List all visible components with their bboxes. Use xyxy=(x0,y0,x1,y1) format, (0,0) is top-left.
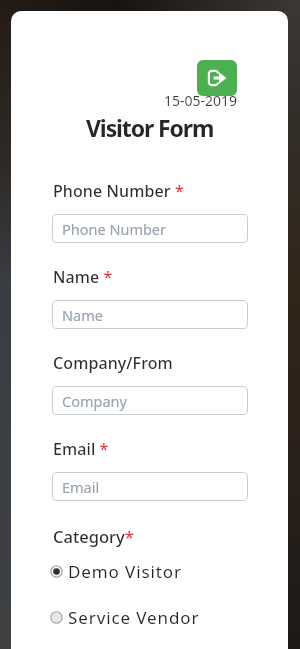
staticText: Service Vendor xyxy=(68,606,200,629)
button[interactable]: Company xyxy=(52,386,248,415)
staticText: Category* xyxy=(53,525,134,547)
staticText: Company xyxy=(62,391,127,411)
button[interactable]: Service Vendor xyxy=(50,606,200,629)
button[interactable]: Email xyxy=(52,472,248,501)
button[interactable] xyxy=(197,60,237,96)
staticText: Email xyxy=(62,477,100,497)
staticText: Name xyxy=(62,305,103,325)
staticText: Email * xyxy=(53,438,109,460)
staticText: Visitor Form xyxy=(86,112,214,143)
button[interactable]: Demo Visitor xyxy=(50,560,182,583)
staticText: Demo Visitor xyxy=(68,560,182,583)
staticText: Phone Number xyxy=(62,219,167,239)
staticText: 15-05-2019 xyxy=(164,91,238,110)
staticText: Phone Number * xyxy=(53,180,184,202)
button[interactable]: Phone Number xyxy=(52,214,248,243)
staticText: Name * xyxy=(53,266,113,288)
staticText: Company/From xyxy=(53,352,173,374)
button[interactable]: Name xyxy=(52,300,248,329)
